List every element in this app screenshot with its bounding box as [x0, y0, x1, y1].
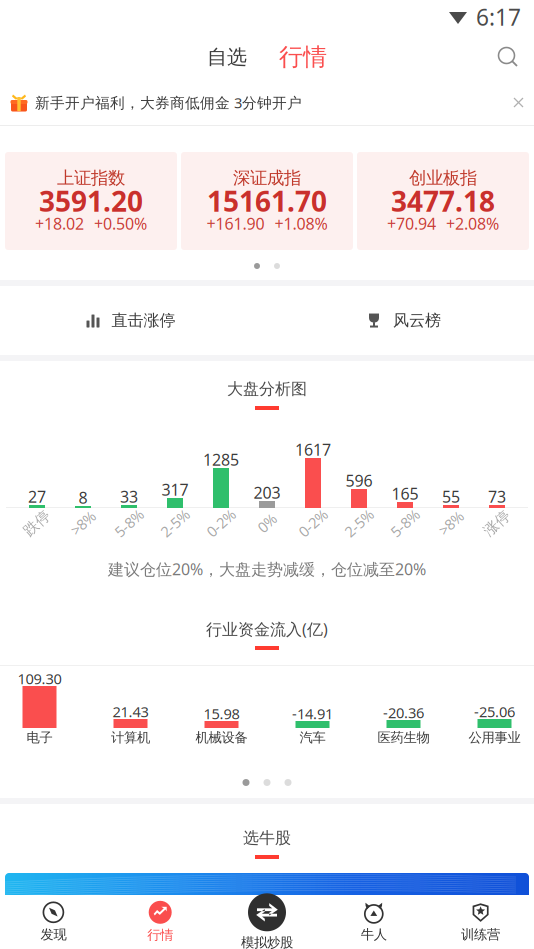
staticText: 27: [28, 486, 46, 507]
staticText: 2-5%: [342, 513, 375, 533]
staticText: 汽车: [299, 729, 325, 746]
staticText: 109.30: [17, 669, 61, 688]
staticText: 3591.20: [39, 182, 143, 220]
staticText: 596: [345, 470, 372, 491]
staticText: 建议仓位20%，大盘走势减缓，仓位减至20%: [108, 558, 426, 580]
staticText: +2.08%: [446, 213, 499, 234]
staticText: 深证成指: [233, 167, 301, 189]
staticText: +18.02: [35, 213, 84, 234]
button[interactable]: Search: [492, 41, 524, 73]
staticText: +1.08%: [274, 213, 327, 234]
staticText: 公用事业: [468, 729, 520, 746]
staticText: 上证指数: [57, 167, 125, 189]
staticText: +70.94: [387, 213, 436, 234]
staticText: 发现: [40, 926, 66, 943]
staticText: 0-2%: [296, 513, 329, 533]
button[interactable]: 发现: [0, 896, 107, 948]
staticText: 医药生物: [377, 729, 429, 746]
button[interactable]: 自选: [191, 37, 263, 77]
staticText: 大盘分析图: [227, 379, 307, 399]
staticText: 15.98: [203, 704, 239, 723]
staticText: 计算机: [111, 729, 150, 746]
button[interactable]: 直击涨停: [0, 286, 267, 355]
staticText: 8: [78, 487, 87, 508]
staticText: 训练营: [461, 926, 500, 943]
button[interactable]: 深证成指: [181, 152, 353, 250]
staticText: 165: [391, 483, 418, 504]
staticText: >8%: [437, 513, 465, 533]
button[interactable]: 上证指数: [5, 152, 177, 250]
staticText: 风云榜: [393, 311, 441, 330]
staticText: -14.91: [292, 704, 333, 723]
staticText: 5-8%: [112, 513, 145, 533]
staticText: 55: [442, 486, 460, 507]
staticText: 机械设备: [195, 729, 247, 746]
staticText: 0%: [257, 513, 277, 533]
staticText: 电子: [26, 729, 52, 746]
button[interactable]: 行情: [263, 34, 343, 80]
staticText: 新手开户福利，大券商低佣金 3分钟开户: [35, 93, 302, 112]
button[interactable]: 创业板指: [357, 152, 529, 250]
staticText: -20.36: [383, 703, 424, 722]
staticText: 自选: [207, 45, 247, 69]
staticText: 21.43: [112, 702, 148, 721]
staticText: 选牛股: [243, 828, 291, 848]
staticText: 0-2%: [204, 513, 237, 533]
staticText: 创业板指: [409, 167, 477, 189]
staticText: 6:17: [476, 2, 521, 32]
button[interactable]: 新手开户福利，大券商低佣金 3分钟开户: [0, 80, 534, 125]
staticText: 2-5%: [158, 513, 191, 533]
staticText: 1285: [203, 449, 239, 470]
staticText: 涨停: [482, 514, 512, 532]
staticText: +0.50%: [94, 213, 147, 234]
button[interactable]: 模拟炒股: [214, 888, 320, 949]
staticText: 模拟炒股: [241, 934, 293, 949]
staticText: 5-8%: [388, 513, 421, 533]
staticText: 73: [488, 486, 506, 507]
staticText: 行情: [147, 927, 173, 943]
button[interactable]: 风云榜: [267, 286, 534, 355]
staticText: 直击涨停: [111, 311, 175, 330]
button[interactable]: 行情: [107, 896, 214, 948]
staticText: >8%: [69, 513, 97, 533]
button[interactable]: 牛人: [320, 896, 427, 948]
staticText: 行情: [279, 42, 327, 72]
staticText: +161.90: [206, 213, 264, 234]
staticText: 牛人: [361, 926, 387, 943]
staticText: 15161.70: [207, 182, 327, 220]
staticText: 行业资金流入(亿): [206, 618, 328, 640]
staticText: 跌停: [22, 514, 52, 532]
staticText: 317: [161, 479, 188, 500]
staticText: 203: [253, 482, 280, 503]
staticText: 3477.18: [391, 182, 495, 220]
staticText: 1617: [295, 439, 331, 460]
staticText: -25.06: [474, 702, 515, 721]
staticText: 33: [120, 486, 138, 507]
button[interactable]: 训练营: [427, 896, 534, 948]
